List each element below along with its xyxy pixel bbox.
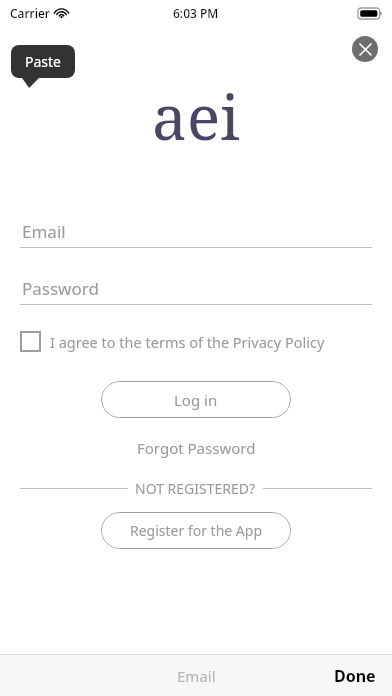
staticText: NOT REGISTERED? [135, 479, 256, 498]
staticText: Password [22, 277, 99, 300]
staticText: aei [152, 74, 240, 158]
button[interactable]: Paste [11, 45, 75, 88]
button[interactable]: Close [352, 36, 378, 62]
button[interactable]: Password [20, 272, 372, 305]
staticText: Done [334, 665, 376, 687]
staticText: Email [22, 220, 66, 243]
button[interactable]: Register for the App [101, 512, 291, 549]
staticText: Log in [174, 390, 218, 410]
button[interactable]: I agree to the terms of the Privacy Poli… [20, 331, 372, 352]
button[interactable]: Log in [101, 381, 291, 418]
staticText: 6:03 PM [173, 5, 219, 21]
staticText: Register for the App [130, 521, 263, 540]
staticText: Carrier [10, 5, 50, 21]
button[interactable]: Forgot Password [129, 435, 264, 461]
staticText: Forgot Password [137, 438, 256, 458]
staticText: Email [177, 666, 216, 686]
button[interactable]: Done [318, 657, 392, 695]
staticText: Paste [25, 52, 61, 71]
staticText: I agree to the terms of the Privacy Poli… [50, 332, 325, 352]
button[interactable]: Email [20, 215, 372, 248]
